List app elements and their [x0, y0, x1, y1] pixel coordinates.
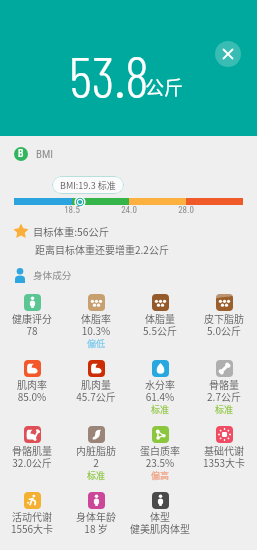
- button[interactable]: 骨骼量: [192, 356, 256, 418]
- staticText: B: [18, 148, 24, 160]
- staticText: 公斤: [145, 73, 184, 101]
- staticText: 标准: [128, 403, 192, 416]
- staticText: 1353大卡: [192, 455, 256, 469]
- button[interactable]: 基础代谢: [192, 422, 256, 484]
- staticText: 骨骼肌量: [0, 443, 64, 457]
- button[interactable]: 身体年龄: [64, 488, 128, 550]
- staticText: 身体成分: [33, 268, 72, 282]
- button[interactable]: 活动代谢: [0, 488, 64, 550]
- staticText: 61.4%: [128, 389, 192, 403]
- staticText: 偏高: [128, 469, 192, 482]
- staticText: 健康评分: [0, 311, 64, 325]
- button[interactable]: 肌肉率: [0, 356, 64, 418]
- button[interactable]: B: [14, 147, 54, 161]
- staticText: BMI:19.3 标准: [60, 179, 116, 192]
- button[interactable]: 蛋白质率: [128, 422, 192, 484]
- staticText: 24.0: [113, 205, 145, 216]
- staticText: 53.8: [69, 41, 149, 109]
- staticText: 标准: [192, 403, 256, 416]
- button[interactable]: 骨骼肌量: [0, 422, 64, 484]
- staticText: 体脂量: [128, 311, 192, 325]
- button[interactable]: 肌肉量: [64, 356, 128, 418]
- button[interactable]: 皮下脂肪: [192, 290, 256, 352]
- staticText: 85.0%: [0, 389, 64, 403]
- staticText: 水分率: [128, 377, 192, 391]
- staticText: 10.3%: [64, 323, 128, 337]
- button[interactable]: 目标体重:56公斤: [13, 223, 110, 239]
- staticText: 骨骼量: [192, 377, 256, 391]
- staticText: 偏低: [64, 337, 128, 350]
- staticText: 18 岁: [64, 521, 128, 535]
- staticText: 肌肉率: [0, 377, 64, 391]
- staticText: 32.0公斤: [0, 455, 64, 469]
- staticText: 身体年龄: [64, 509, 128, 523]
- button[interactable]: 体型: [128, 488, 192, 550]
- button[interactable]: 体脂率: [64, 290, 128, 352]
- staticText: 体型: [128, 509, 192, 523]
- staticText: 2.7公斤: [192, 389, 256, 403]
- staticText: 1556大卡: [0, 521, 64, 535]
- staticText: 体脂率: [64, 311, 128, 325]
- button[interactable]: 内脏脂肪: [64, 422, 128, 484]
- staticText: 距离目标体重还要增重2.2公斤: [35, 242, 169, 256]
- staticText: 标准: [64, 469, 128, 482]
- staticText: 内脏脂肪: [64, 443, 128, 457]
- staticText: 28.0: [170, 205, 202, 216]
- button[interactable]: 健康评分: [0, 290, 64, 352]
- staticText: 活动代谢: [0, 509, 64, 523]
- staticText: 蛋白质率: [128, 443, 192, 457]
- button[interactable]: Close: [215, 41, 241, 67]
- staticText: 健美肌肉体型: [128, 521, 192, 535]
- staticText: 23.5%: [128, 455, 192, 469]
- button[interactable]: 体脂量: [128, 290, 192, 352]
- staticText: 5.5公斤: [128, 323, 192, 337]
- staticText: 45.7公斤: [64, 389, 128, 403]
- staticText: BMI: [36, 148, 54, 161]
- staticText: 肌肉量: [64, 377, 128, 391]
- staticText: 78: [0, 323, 64, 337]
- staticText: 5.0公斤: [192, 323, 256, 337]
- staticText: 2: [64, 455, 128, 469]
- button[interactable]: 水分率: [128, 356, 192, 418]
- staticText: 目标体重:56公斤: [33, 224, 110, 239]
- staticText: 皮下脂肪: [192, 311, 256, 325]
- staticText: 18.5: [56, 205, 88, 216]
- staticText: 基础代谢: [192, 443, 256, 457]
